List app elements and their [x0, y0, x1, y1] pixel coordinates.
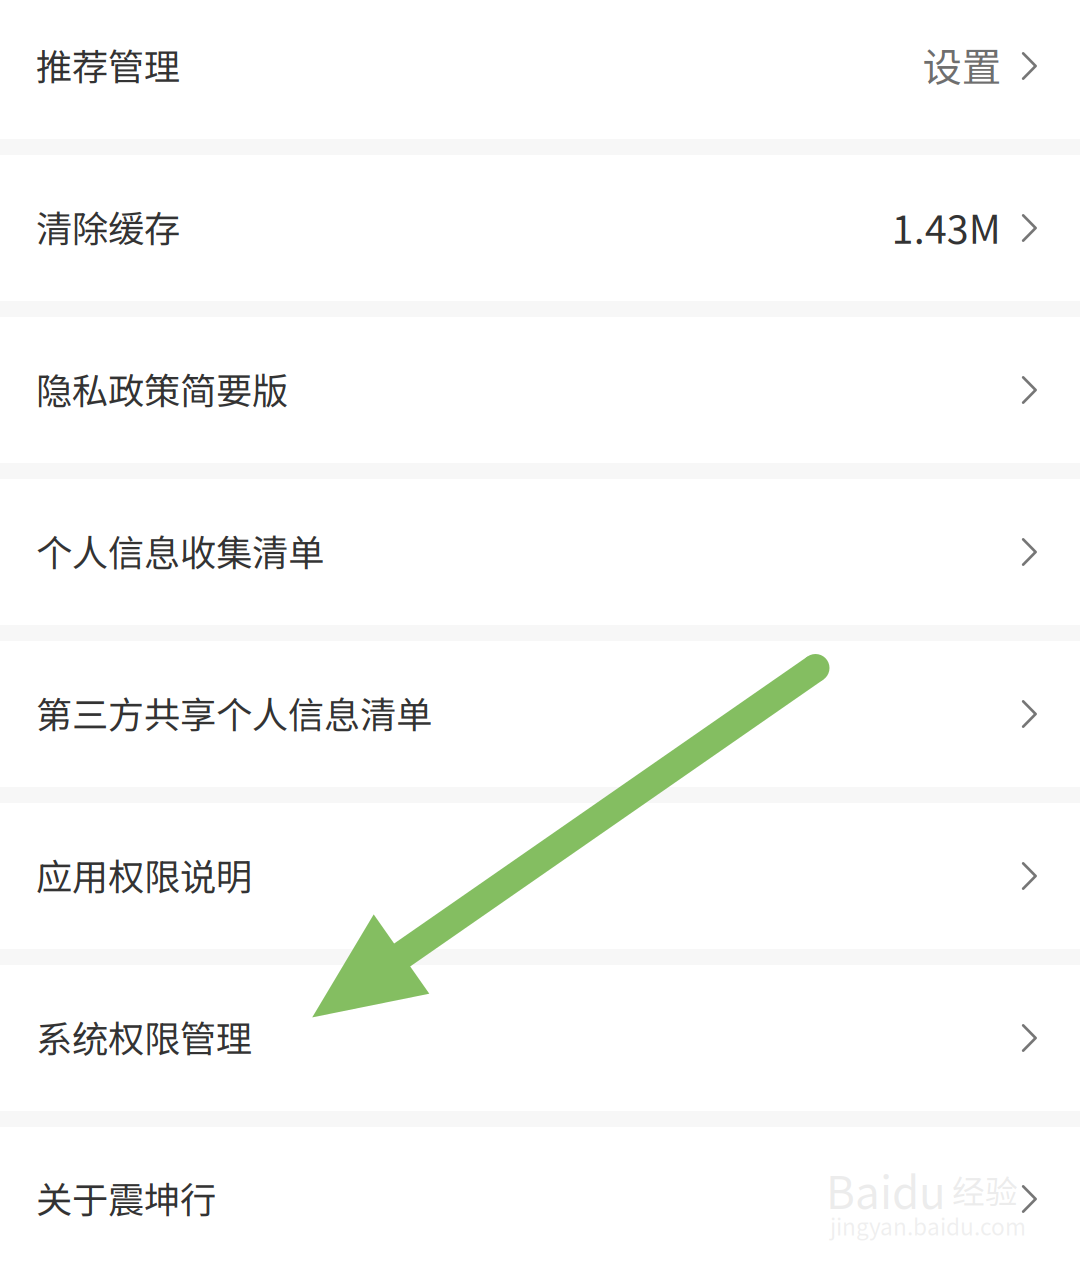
button[interactable]: 清除缓存 — [0, 155, 1080, 301]
staticText: Baidu — [826, 1158, 946, 1222]
button[interactable]: 隐私政策简要版 — [0, 317, 1080, 463]
button[interactable]: 第三方共享个人信息清单 — [0, 641, 1080, 787]
staticText: 系统权限管理 — [36, 1010, 252, 1063]
staticText: 经验 — [952, 1166, 1018, 1213]
button[interactable]: 推荐管理 — [0, 0, 1080, 139]
staticText: 关于震坤行 — [36, 1171, 216, 1224]
button[interactable]: 系统权限管理 — [0, 965, 1080, 1111]
staticText: 1.43M — [892, 198, 1001, 255]
staticText: 第三方共享个人信息清单 — [36, 686, 432, 739]
button[interactable]: 关于震坤行 — [0, 1127, 1080, 1264]
staticText: 推荐管理 — [36, 38, 180, 91]
staticText: 设置 — [923, 36, 1001, 93]
staticText: 隐私政策简要版 — [36, 362, 288, 415]
staticText: 清除缓存 — [36, 200, 180, 253]
button[interactable]: 个人信息收集清单 — [0, 479, 1080, 625]
staticText: jingyan.baidu.com — [830, 1209, 1026, 1242]
staticText: 个人信息收集清单 — [36, 524, 324, 577]
staticText: 应用权限说明 — [36, 848, 252, 901]
button[interactable]: 应用权限说明 — [0, 803, 1080, 949]
